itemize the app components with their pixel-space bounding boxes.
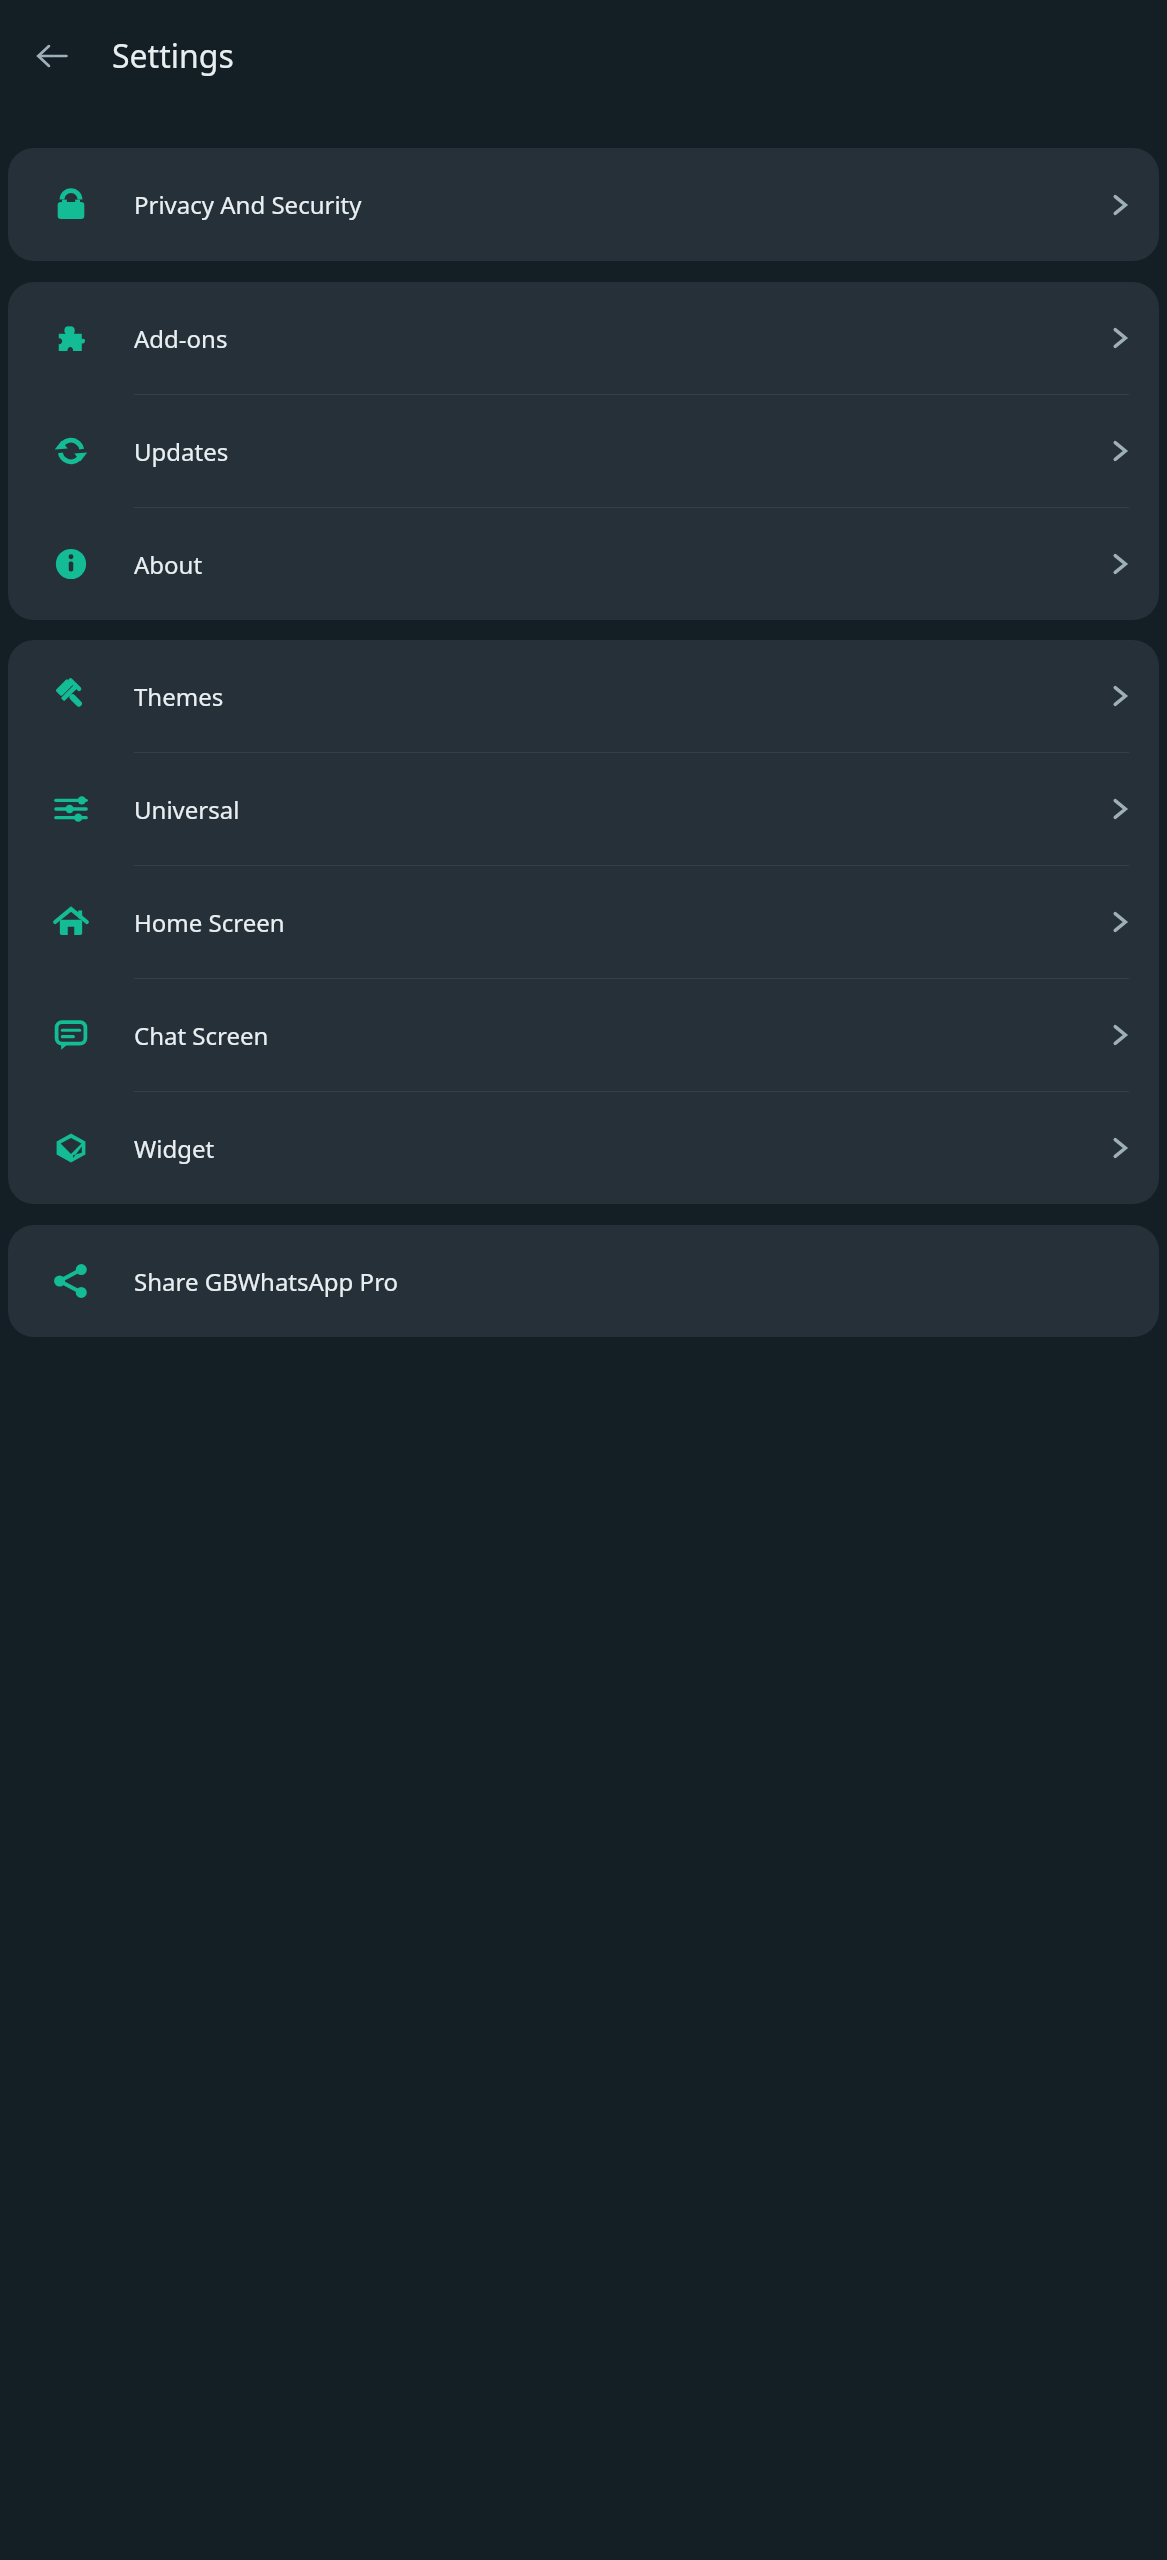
button[interactable]: Widget — [8, 1092, 1159, 1204]
staticText: About — [134, 548, 1081, 581]
button[interactable]: About — [8, 508, 1159, 620]
button[interactable]: Updates — [8, 395, 1159, 507]
staticText: Universal — [134, 793, 1081, 826]
button[interactable]: Privacy And Security — [8, 148, 1159, 261]
button[interactable]: Home Screen — [8, 866, 1159, 978]
staticText: Settings — [112, 34, 234, 78]
button[interactable]: Themes — [8, 640, 1159, 752]
button[interactable]: Back — [18, 22, 86, 90]
staticText: Chat Screen — [134, 1019, 1081, 1052]
staticText: Share GBWhatsApp Pro — [134, 1265, 1081, 1298]
staticText: Widget — [134, 1132, 1081, 1165]
button[interactable]: Share GBWhatsApp Pro — [8, 1225, 1159, 1337]
staticText: Home Screen — [134, 906, 1081, 939]
staticText: Privacy And Security — [134, 188, 1081, 221]
staticText: Updates — [134, 435, 1081, 468]
staticText: Themes — [134, 680, 1081, 713]
button[interactable]: Universal — [8, 753, 1159, 865]
staticText: Add-ons — [134, 322, 1081, 355]
button[interactable]: Chat Screen — [8, 979, 1159, 1091]
button[interactable]: Add-ons — [8, 282, 1159, 394]
